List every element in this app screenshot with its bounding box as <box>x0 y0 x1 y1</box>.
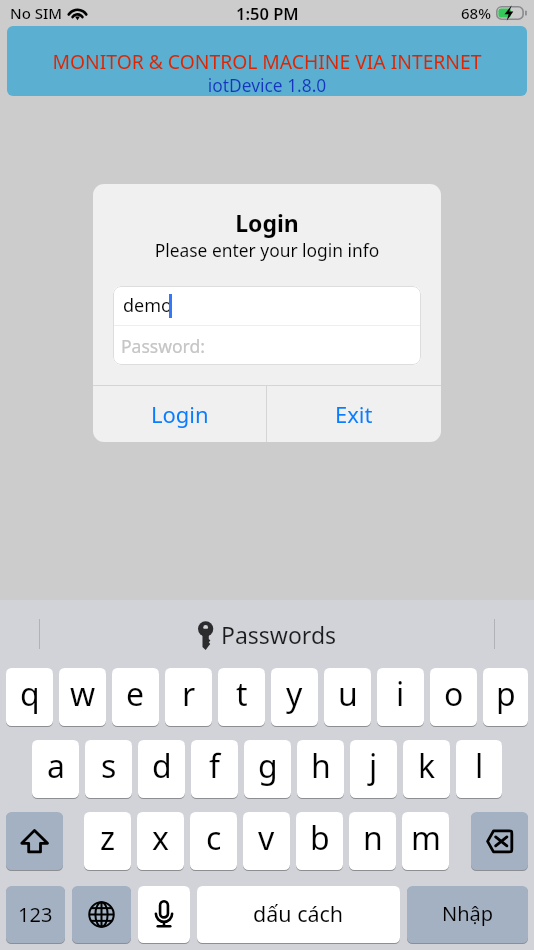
staticText: Exit <box>335 399 373 429</box>
staticText: g <box>258 744 278 788</box>
button[interactable]: c <box>190 812 237 870</box>
button[interactable]: dấu cách <box>197 886 400 943</box>
staticText: m <box>411 816 441 860</box>
button[interactable]: 123 <box>6 886 65 943</box>
button[interactable]: u <box>324 668 371 726</box>
staticText: Login <box>151 399 209 429</box>
button[interactable]: j <box>350 740 397 798</box>
button[interactable]: Passwords <box>197 619 337 650</box>
staticText: iotDevice 1.8.0 <box>7 73 527 96</box>
staticText: c <box>206 816 222 860</box>
button[interactable]: Shift <box>6 812 63 870</box>
staticText: x <box>152 816 169 860</box>
button[interactable]: n <box>349 812 396 870</box>
staticText: i <box>396 672 405 716</box>
staticText: d <box>152 744 172 788</box>
button[interactable]: t <box>218 668 265 726</box>
staticText: 1:50 PM <box>236 2 299 24</box>
staticText: MONITOR & CONTROL MACHINE VIA INTERNET <box>7 48 527 74</box>
button[interactable]: h <box>297 740 344 798</box>
button[interactable]: Login <box>93 386 266 442</box>
staticText: r <box>182 672 196 716</box>
staticText: b <box>310 816 330 860</box>
staticText: a <box>47 744 65 788</box>
button[interactable]: m <box>402 812 449 870</box>
staticText: e <box>126 672 145 716</box>
staticText: z <box>100 816 116 860</box>
staticText: j <box>369 744 378 788</box>
staticText: n <box>363 816 383 860</box>
button[interactable]: Dictation <box>138 886 190 943</box>
staticText: Password: <box>121 334 205 358</box>
button[interactable]: i <box>377 668 424 726</box>
button[interactable]: v <box>243 812 290 870</box>
button[interactable]: k <box>403 740 450 798</box>
staticText: dấu cách <box>253 899 344 928</box>
staticText: o <box>444 672 464 716</box>
staticText: Passwords <box>221 619 337 650</box>
staticText: t <box>236 672 248 716</box>
button[interactable]: z <box>84 812 131 870</box>
button[interactable]: Nhập <box>407 886 528 943</box>
staticText: q <box>20 672 40 716</box>
staticText: Login <box>93 207 441 238</box>
button[interactable]: x <box>137 812 184 870</box>
button[interactable]: q <box>6 668 53 726</box>
button[interactable]: o <box>430 668 477 726</box>
staticText: p <box>496 672 516 716</box>
button[interactable]: e <box>112 668 159 726</box>
staticText: k <box>418 744 436 788</box>
button[interactable]: f <box>191 740 238 798</box>
button[interactable]: Backspace <box>471 812 528 870</box>
staticText: u <box>338 672 358 716</box>
button[interactable]: b <box>296 812 343 870</box>
staticText: f <box>209 744 221 788</box>
button[interactable]: g <box>244 740 291 798</box>
staticText: l <box>475 744 484 788</box>
staticText: 68% <box>461 3 491 23</box>
button[interactable]: w <box>59 668 106 726</box>
button[interactable]: d <box>138 740 185 798</box>
button[interactable]: l <box>456 740 502 798</box>
button[interactable]: Next keyboard <box>72 886 131 943</box>
button[interactable]: Exit <box>267 386 441 442</box>
staticText: 123 <box>18 901 53 928</box>
button[interactable]: a <box>32 740 79 798</box>
staticText: No SIM <box>10 3 63 23</box>
staticText: s <box>101 744 117 788</box>
staticText: Please enter your login info <box>93 238 441 262</box>
button[interactable]: s <box>85 740 132 798</box>
staticText: v <box>258 816 275 860</box>
staticText: Nhập <box>442 900 494 927</box>
staticText: h <box>311 744 331 788</box>
button[interactable]: p <box>483 668 528 726</box>
staticText: demo <box>123 293 172 318</box>
button[interactable]: y <box>271 668 318 726</box>
button[interactable]: r <box>165 668 212 726</box>
staticText: y <box>286 672 303 716</box>
staticText: w <box>70 672 96 716</box>
